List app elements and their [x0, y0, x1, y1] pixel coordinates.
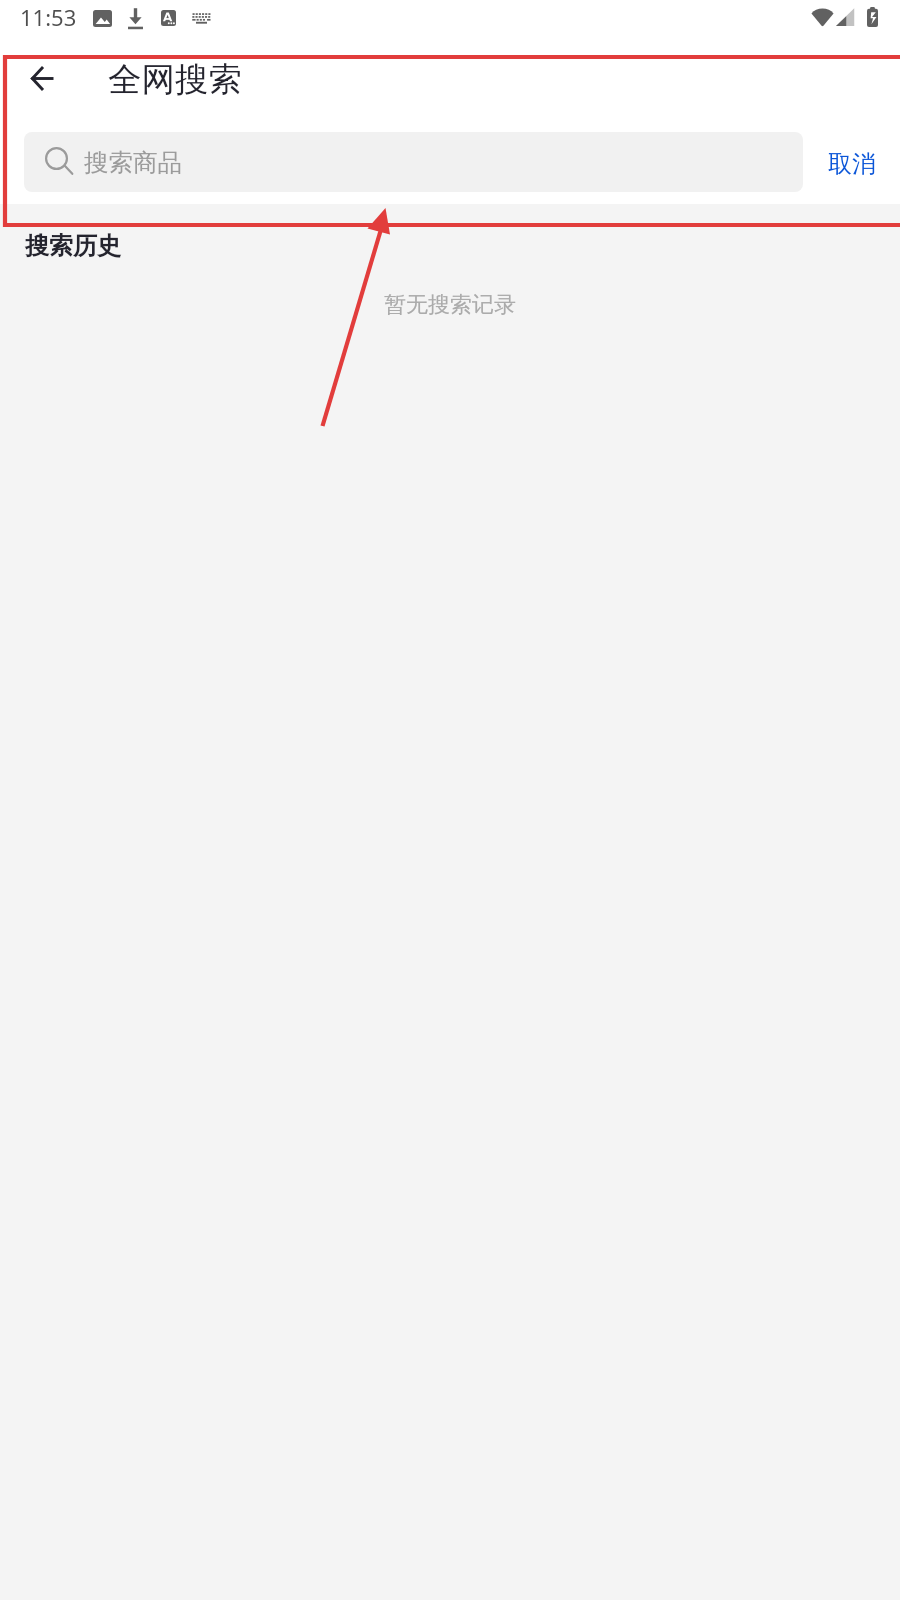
staticText: 全网搜索 — [108, 59, 242, 101]
staticText: 11:53 — [20, 2, 77, 32]
staticText: 搜索商品 — [84, 147, 182, 178]
staticText: 暂无搜索记录 — [0, 291, 900, 319]
button[interactable]: 取消 — [818, 141, 886, 187]
button[interactable]: Back — [19, 54, 67, 102]
button[interactable]: 搜索商品 — [24, 132, 803, 192]
staticText: 取消 — [828, 149, 876, 179]
staticText: 搜索历史 — [25, 231, 121, 261]
